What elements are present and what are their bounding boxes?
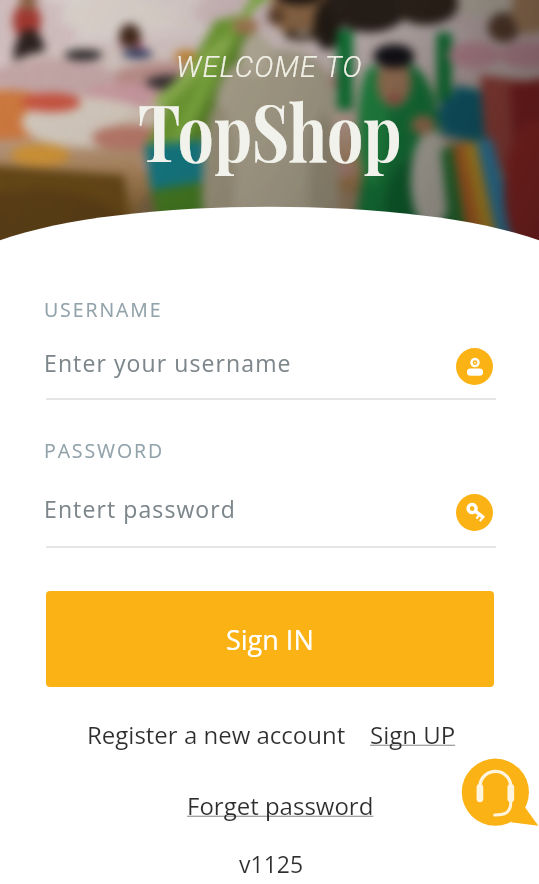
staticText: Sign UP — [370, 718, 456, 751]
button[interactable]: Forget password — [187, 789, 374, 822]
staticText: Forget password — [187, 789, 374, 822]
staticText: Enter your username — [44, 347, 292, 378]
button[interactable]: Sign UP — [370, 718, 456, 751]
staticText: Sign IN — [226, 621, 314, 658]
staticText: v1125 — [239, 848, 304, 879]
staticText: Entert password — [44, 493, 236, 524]
button[interactable]: Sign IN — [46, 591, 494, 687]
button[interactable]: Username — [456, 348, 493, 385]
staticText: USERNAME — [44, 296, 163, 323]
staticText: PASSWORD — [44, 437, 165, 464]
staticText: Register a new account — [87, 718, 346, 751]
staticText: TopShop — [138, 77, 402, 182]
button[interactable]: Customer support — [461, 757, 539, 836]
button[interactable]: Show password — [456, 494, 493, 531]
staticText: WELCOME TO — [176, 50, 363, 84]
